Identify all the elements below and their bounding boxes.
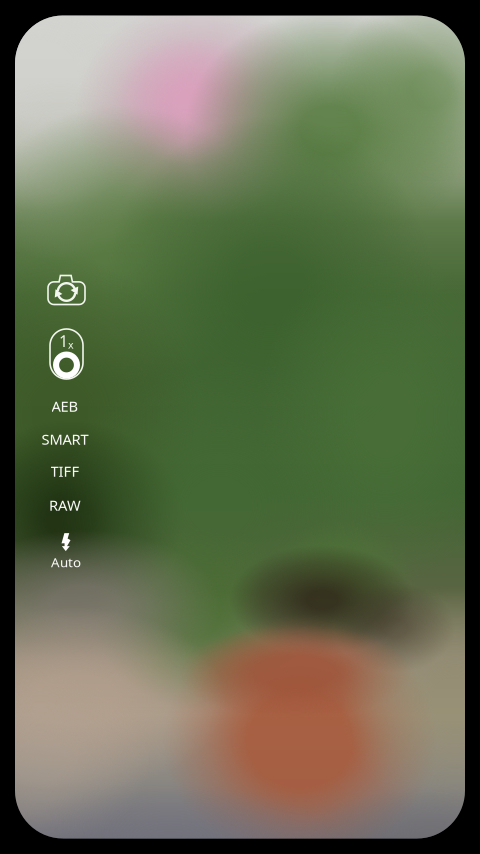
staticText: RAW [49,495,81,515]
button[interactable]: AEB [30,395,100,417]
staticText: SMART [41,429,88,449]
staticText: Auto [51,553,81,571]
button[interactable]: TIFF [30,460,100,482]
staticText: 1 [59,330,68,352]
button[interactable]: RAW [30,494,100,516]
button[interactable]: Switch camera [44,270,88,310]
staticText: TIFF [50,461,79,481]
staticText: AEB [51,396,78,416]
button[interactable]: Auto [36,530,96,574]
button[interactable]: Zoom 1x [44,327,88,381]
staticText: x [68,337,74,352]
button[interactable]: SMART [30,428,100,450]
